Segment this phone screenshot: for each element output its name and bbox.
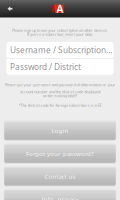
staticText: Username / Subscription Code <box>10 44 113 56</box>
staticText: Login <box>51 126 68 135</box>
staticText: Please use your username and password of… <box>4 82 115 87</box>
button[interactable]: Login <box>4 121 116 141</box>
staticText: Contact us <box>44 172 75 180</box>
staticText: Password / District <box>10 61 81 72</box>
staticText: *The district code for foreign subscribe… <box>18 102 101 108</box>
staticText: Info, privacy <box>41 195 78 200</box>
staticText: Please sign up to use your subscription … <box>12 27 108 33</box>
staticText: on the mailing label? <box>42 93 77 98</box>
staticText: A <box>57 2 64 15</box>
staticText: account number and the district code dis… <box>20 89 100 94</box>
staticText: If you're a subscriber, insert your data… <box>27 31 93 37</box>
button[interactable]: Info, privacy <box>4 189 116 200</box>
button[interactable]: Forgot your password? <box>4 144 116 163</box>
button[interactable]: Password / District <box>6 59 113 75</box>
button[interactable]: Contact us <box>4 166 116 186</box>
staticText: Forgot your password? <box>26 149 94 158</box>
button[interactable]: Username / Subscription Code <box>6 42 113 58</box>
button[interactable]: Back <box>0 0 20 17</box>
